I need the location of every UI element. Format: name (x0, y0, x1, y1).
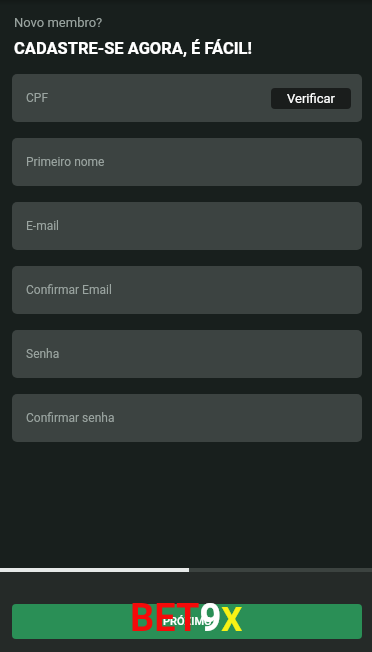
staticText: E-mail (26, 219, 60, 233)
staticText: CADASTRE-SE AGORA, É FÁCIL! (14, 39, 252, 58)
other: BET9x (130, 596, 243, 641)
staticText: Confirmar Email (26, 283, 112, 297)
button[interactable]: PRÓXIMO (12, 604, 362, 639)
button[interactable]: CPF (12, 74, 362, 122)
button[interactable]: Confirmar Email (12, 266, 362, 314)
staticText: Primeiro nome (26, 155, 105, 169)
button[interactable]: Primeiro nome (12, 138, 362, 186)
staticText: BET9X (130, 596, 243, 641)
button[interactable]: Confirmar senha (12, 394, 362, 442)
button[interactable]: Senha (12, 330, 362, 378)
button[interactable]: Verificar (271, 88, 351, 109)
button[interactable]: E-mail (12, 202, 362, 250)
staticText: Confirmar senha (26, 411, 115, 425)
staticText: Novo membro? (14, 15, 103, 30)
staticText: Verificar (287, 91, 335, 106)
staticText: Senha (26, 347, 60, 361)
staticText: CPF (26, 91, 49, 105)
staticText: PRÓXIMO (163, 615, 212, 628)
